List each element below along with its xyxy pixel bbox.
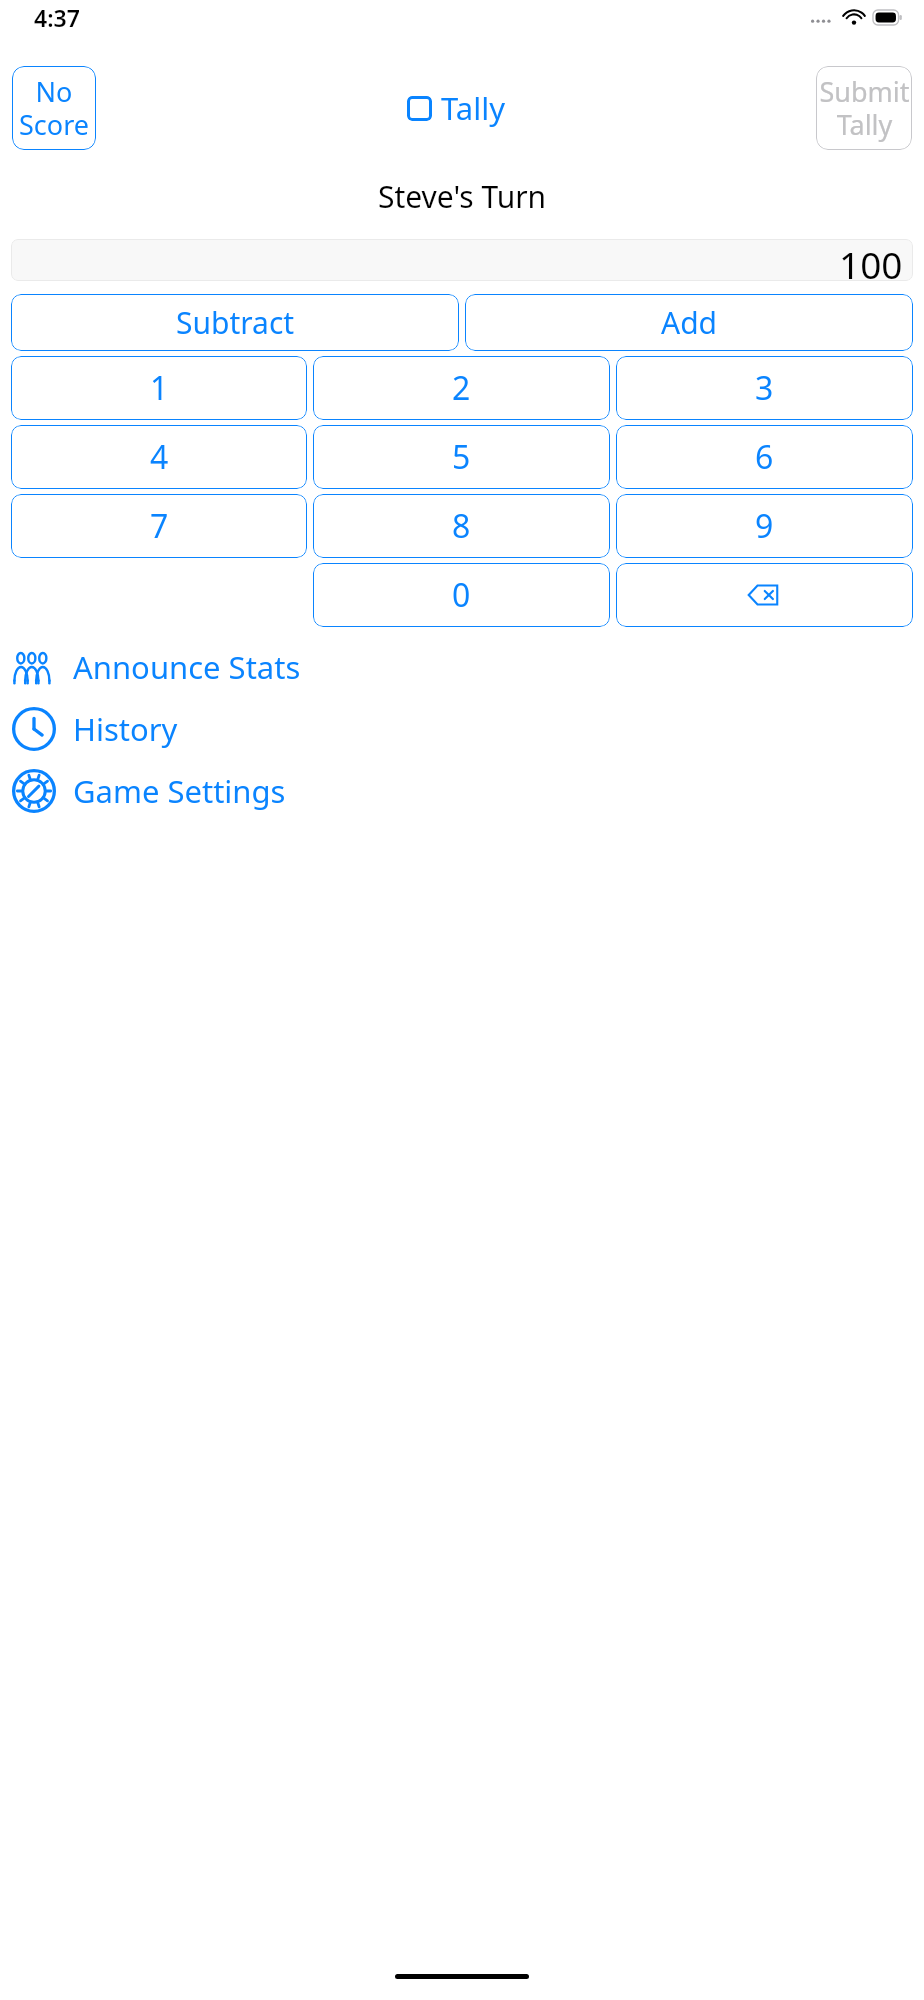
button[interactable]: No Score bbox=[12, 66, 96, 150]
staticText: 100 bbox=[839, 239, 903, 281]
button[interactable]: 3 bbox=[616, 356, 913, 420]
button[interactable]: 100 bbox=[11, 239, 913, 281]
staticText: Tally bbox=[441, 87, 505, 129]
staticText: Add bbox=[661, 302, 718, 343]
staticText: 2 bbox=[452, 366, 471, 410]
button[interactable]: Game Settings bbox=[0, 765, 924, 817]
staticText: 4 bbox=[150, 435, 169, 479]
staticText: Announce Stats bbox=[73, 646, 301, 688]
button[interactable]: Add bbox=[465, 294, 913, 351]
button[interactable]: Submit Tally bbox=[816, 66, 912, 150]
button[interactable]: 6 bbox=[616, 425, 913, 489]
staticText: 6 bbox=[755, 435, 774, 479]
button[interactable]: History bbox=[0, 703, 924, 755]
staticText: No Score bbox=[19, 73, 89, 143]
button[interactable]: 1 bbox=[11, 356, 307, 420]
button[interactable]: 5 bbox=[313, 425, 610, 489]
staticText: History bbox=[73, 708, 178, 750]
staticText: 4:37 bbox=[34, 2, 80, 33]
button[interactable]: Backspace bbox=[616, 563, 913, 627]
button[interactable]: Subtract bbox=[11, 294, 459, 351]
staticText: Game Settings bbox=[73, 770, 286, 812]
staticText: 1 bbox=[150, 366, 169, 410]
button[interactable]: 2 bbox=[313, 356, 610, 420]
staticText: 0 bbox=[452, 573, 471, 617]
staticText: 8 bbox=[452, 504, 471, 548]
button[interactable]: 7 bbox=[11, 494, 307, 558]
staticText: 9 bbox=[755, 504, 774, 548]
staticText: 5 bbox=[452, 435, 471, 479]
button[interactable]: 9 bbox=[616, 494, 913, 558]
button[interactable]: 4 bbox=[11, 425, 307, 489]
staticText: Subtract bbox=[176, 302, 295, 343]
staticText: Steve's Turn bbox=[378, 176, 547, 217]
staticText: 3 bbox=[755, 366, 774, 410]
button[interactable]: 0 bbox=[313, 563, 610, 627]
button[interactable]: Announce Stats bbox=[0, 641, 924, 693]
staticText: Submit Tally bbox=[819, 73, 910, 143]
staticText: 7 bbox=[150, 504, 169, 548]
button[interactable]: 8 bbox=[313, 494, 610, 558]
button[interactable]: Tally bbox=[405, 83, 507, 133]
